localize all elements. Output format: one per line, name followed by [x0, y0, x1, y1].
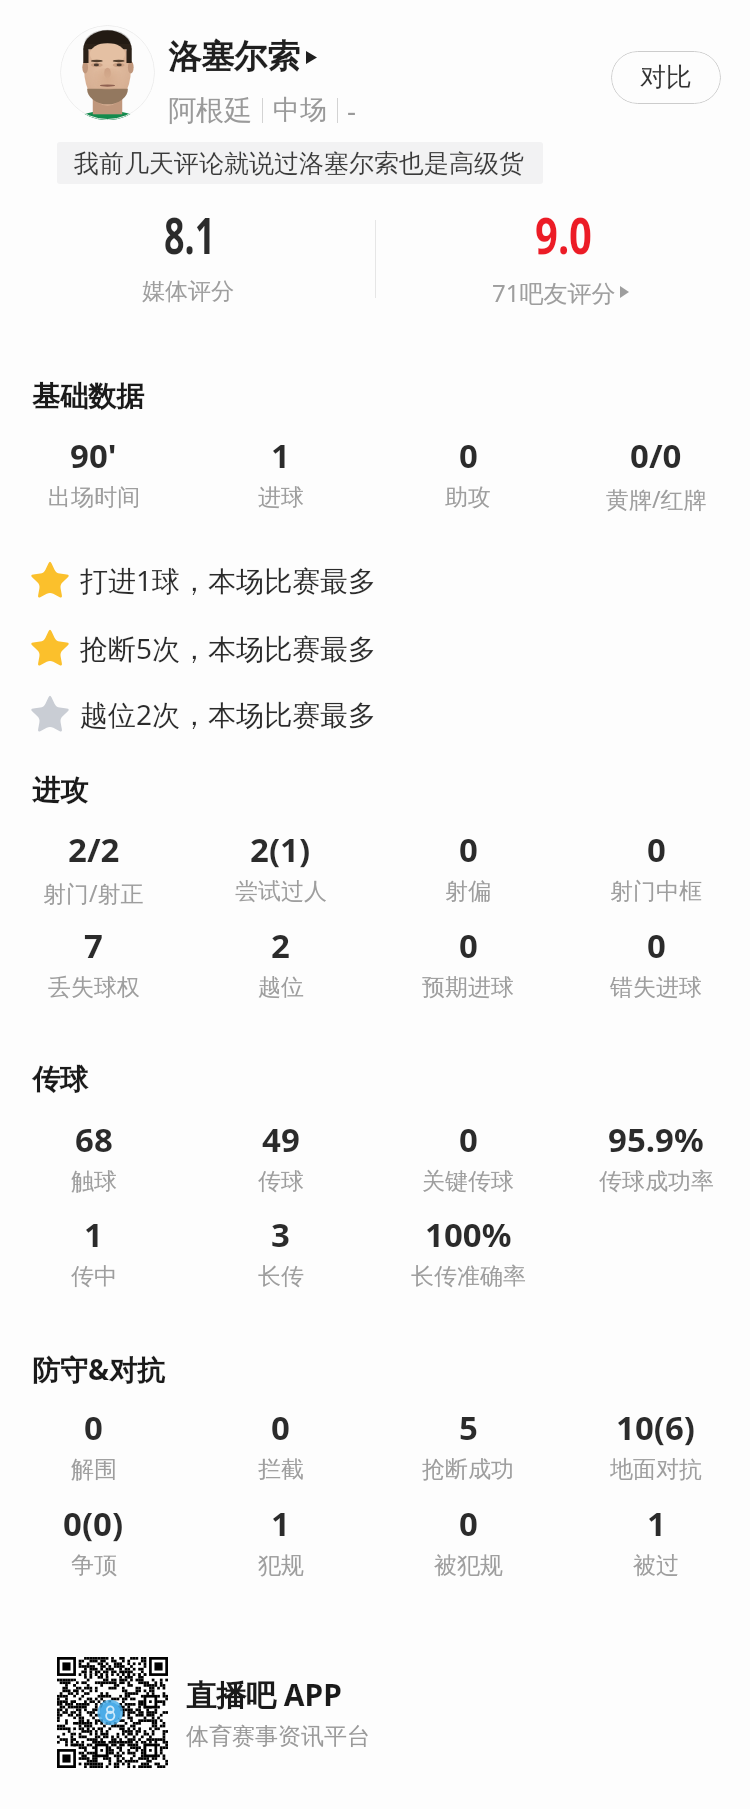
button[interactable]: 洛塞尔索 [168, 36, 317, 78]
button[interactable]: 对比 [611, 51, 721, 104]
staticText: 0 [84, 1405, 103, 1450]
button[interactable]: 71吧友评分 [410, 276, 710, 308]
staticText: 49 [262, 1117, 300, 1162]
staticText: 越位 [258, 973, 304, 1002]
button[interactable]: 抢断5次，本场比赛最多 [28, 622, 377, 674]
staticText: 丢失球权 [48, 973, 140, 1002]
button[interactable]: Player photo [60, 25, 155, 120]
staticText: 洛塞尔索 [168, 36, 300, 78]
staticText: 0 [271, 1405, 290, 1450]
staticText: 0/0 [630, 433, 682, 478]
staticText: 传中 [71, 1262, 117, 1291]
staticText: 71吧友评分 [492, 276, 616, 308]
staticText: 越位2次，本场比赛最多 [80, 695, 377, 733]
staticText: 阿根廷 [168, 93, 252, 128]
staticText: 2(1) [250, 827, 311, 872]
staticText: 7 [84, 923, 103, 968]
staticText: 1 [84, 1212, 103, 1257]
staticText: 1 [647, 1501, 666, 1546]
staticText: 媒体评分 [142, 277, 234, 306]
button[interactable]: Scan QR code to download the app [57, 1657, 168, 1768]
staticText: 传球成功率 [599, 1167, 714, 1196]
staticText: 直播吧 APP [186, 1674, 342, 1715]
staticText: 1 [271, 1501, 290, 1546]
staticText: 0 [459, 923, 478, 968]
staticText: 被过 [633, 1551, 679, 1580]
staticText: 争顶 [71, 1551, 117, 1580]
staticText: 100% [425, 1212, 512, 1257]
staticText: 防守&对抗 [32, 1350, 166, 1388]
staticText: 解围 [71, 1455, 117, 1484]
staticText: 68 [75, 1117, 113, 1162]
staticText: 中场 [273, 93, 327, 127]
staticText: 触球 [71, 1167, 117, 1196]
button[interactable]: 直播吧 APP [186, 1674, 342, 1715]
staticText: 传球 [32, 1062, 88, 1097]
staticText: 地面对抗 [610, 1455, 702, 1484]
staticText: 关键传球 [422, 1167, 514, 1196]
staticText: 10(6) [616, 1405, 696, 1450]
staticText: 0 [647, 923, 666, 968]
button[interactable]: 打进1球，本场比赛最多 [28, 554, 377, 606]
staticText: 射门/射正 [43, 877, 144, 908]
staticText: 拦截 [258, 1455, 304, 1484]
staticText: 3 [271, 1212, 290, 1257]
staticText: 抢断成功 [422, 1455, 514, 1484]
staticText: 我前几天评论就说过洛塞尔索也是高级货 [74, 148, 524, 179]
staticText: 犯规 [258, 1551, 304, 1580]
staticText: 1 [271, 433, 290, 478]
staticText: 传球 [258, 1167, 304, 1196]
staticText: 90' [70, 433, 117, 478]
staticText: - [347, 91, 357, 129]
staticText: 出场时间 [48, 483, 140, 512]
staticText: 预期进球 [422, 973, 514, 1002]
staticText: 助攻 [445, 483, 491, 512]
staticText: 尝试过人 [235, 877, 327, 906]
staticText: 长传 [258, 1262, 304, 1291]
staticText: 黄牌/红牌 [606, 483, 707, 514]
staticText: 打进1球，本场比赛最多 [80, 561, 377, 599]
staticText: 0 [459, 433, 478, 478]
staticText: 0 [459, 827, 478, 872]
staticText: 体育赛事资讯平台 [186, 1722, 370, 1751]
staticText: 抢断5次，本场比赛最多 [80, 629, 377, 667]
staticText: 进攻 [32, 773, 88, 808]
staticText: 9.0 [535, 201, 593, 269]
button[interactable]: 越位2次，本场比赛最多 [28, 688, 377, 740]
staticText: 错失进球 [610, 973, 702, 1002]
staticText: 对比 [640, 61, 692, 94]
staticText: 进球 [258, 483, 304, 512]
staticText: 2/2 [68, 827, 120, 872]
staticText: 8.1 [164, 201, 216, 269]
staticText: 射偏 [445, 877, 491, 906]
staticText: 0 [459, 1501, 478, 1546]
staticText: 0(0) [63, 1501, 124, 1546]
staticText: 基础数据 [32, 379, 144, 414]
staticText: 5 [459, 1405, 478, 1450]
button[interactable]: 我前几天评论就说过洛塞尔索也是高级货 [57, 142, 543, 184]
staticText: 被犯规 [434, 1551, 503, 1580]
staticText: 射门中框 [610, 877, 702, 906]
staticText: 0 [459, 1117, 478, 1162]
staticText: 95.9% [608, 1117, 704, 1162]
staticText: 0 [647, 827, 666, 872]
staticText: 长传准确率 [411, 1262, 526, 1291]
staticText: 2 [271, 923, 290, 968]
